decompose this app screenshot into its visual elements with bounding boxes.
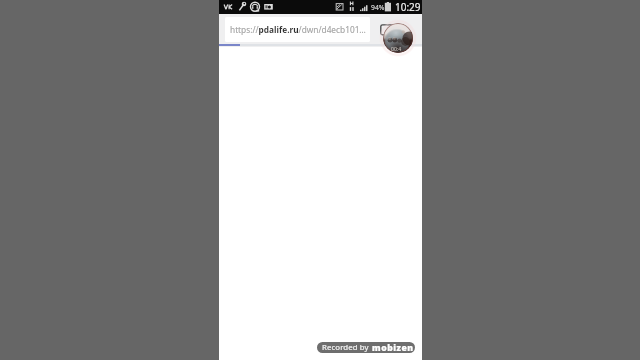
button[interactable]: Tabs [380,24,394,36]
staticText: 94% [371,3,385,12]
staticText: 10:29 [395,0,421,14]
staticText: 00:4 [391,45,402,52]
staticText: https://pdalife.ru/dwn/d4ecb101… [230,24,366,35]
button[interactable]: Floating video player [383,23,413,53]
staticText: mobizen [372,342,414,353]
button[interactable]: https://pdalife.ru/dwn/d4ecb101… [225,17,370,42]
staticText: Recorded by [322,342,369,353]
